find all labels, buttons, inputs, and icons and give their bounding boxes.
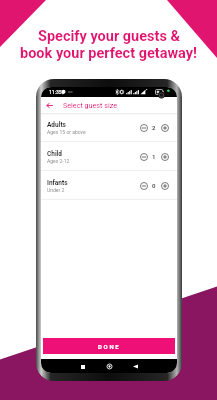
staticText: Specify your guests & [38,28,180,45]
staticText: 11:35 [49,89,62,95]
staticText: 0 [152,182,156,189]
staticText: Ages 15 or above [47,129,86,135]
staticText: DONE [98,343,121,350]
button[interactable]: Increase Adults [159,122,170,133]
staticText: Ages 2-12 [47,158,70,164]
staticText: Under 2 [47,187,65,193]
staticText: 1 [152,153,156,160]
staticText: Adults [47,121,66,129]
button[interactable]: Back [130,361,141,372]
staticText: Select guest size [63,101,117,109]
staticText: Infants [47,179,68,187]
button[interactable]: Increase Infants [159,180,170,191]
button[interactable]: Decrease Child [138,151,149,162]
staticText: 2 [152,124,156,131]
button[interactable]: Child [41,142,177,171]
button[interactable]: Adults [41,113,177,142]
button[interactable]: DONE [43,338,175,354]
button[interactable]: Increase Child [159,151,170,162]
button[interactable]: Infants [41,171,177,200]
button[interactable]: Decrease Infants [138,180,149,191]
staticText: Child [47,150,62,158]
button[interactable]: Back [41,97,58,113]
button[interactable]: Decrease Adults [138,122,149,133]
button[interactable]: Home [104,361,115,372]
button[interactable]: Recents [77,361,88,372]
staticText: book your perfect getaway! [20,45,197,62]
